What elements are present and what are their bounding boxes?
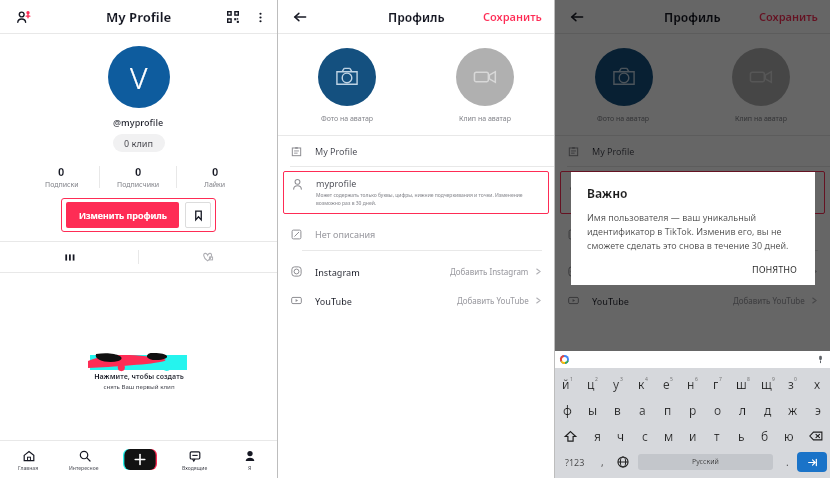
- button[interactable]: My Profile: [278, 136, 554, 166]
- button[interactable]: ч: [609, 423, 633, 449]
- button[interactable]: г: [705, 371, 730, 397]
- button[interactable]: myprofile: [560, 171, 825, 214]
- button[interactable]: э: [805, 397, 830, 423]
- button[interactable]: щ: [755, 371, 780, 397]
- staticText: Подписки: [45, 180, 79, 190]
- staticText: ж: [788, 402, 798, 418]
- button[interactable]: н: [680, 371, 705, 397]
- button[interactable]: е: [655, 371, 680, 397]
- staticText: м: [664, 428, 674, 444]
- staticText: щ: [761, 376, 772, 392]
- button[interactable]: Back: [563, 3, 591, 31]
- button[interactable]: Русский: [638, 454, 773, 470]
- staticText: V: [130, 57, 148, 98]
- button[interactable]: ц: [580, 371, 605, 397]
- button[interactable]: QR code: [219, 3, 247, 31]
- staticText: Профиль: [388, 9, 445, 25]
- button[interactable]: Instagram: [555, 257, 830, 286]
- staticText: 2: [595, 376, 598, 383]
- staticText: Главная: [18, 465, 39, 472]
- button[interactable]: а: [630, 397, 655, 423]
- button[interactable]: Клип на аватар: [416, 48, 554, 124]
- button[interactable]: Фото на аватар: [555, 48, 692, 124]
- button[interactable]: myprofile: [283, 171, 549, 214]
- button[interactable]: 0: [24, 164, 99, 190]
- button[interactable]: Изменить профиль: [66, 202, 179, 228]
- button[interactable]: Videos: [0, 242, 138, 272]
- staticText: Добавить Instagram: [726, 266, 805, 277]
- button[interactable]: ш: [730, 371, 755, 397]
- button[interactable]: в: [605, 397, 630, 423]
- button[interactable]: 0: [177, 164, 253, 190]
- button[interactable]: с: [633, 423, 657, 449]
- button[interactable]: Главная: [0, 441, 56, 478]
- button[interactable]: Next: [797, 452, 827, 472]
- button[interactable]: ю: [777, 423, 801, 449]
- button[interactable]: Add friends: [8, 2, 38, 32]
- button[interactable]: я: [585, 423, 609, 449]
- staticText: Нажмите, чтобы создать: [94, 372, 184, 382]
- button[interactable]: ф: [555, 397, 580, 423]
- button[interactable]: Я: [222, 441, 277, 478]
- button[interactable]: ы: [580, 397, 605, 423]
- button[interactable]: й: [555, 371, 580, 397]
- button[interactable]: к: [630, 371, 655, 397]
- button[interactable]: ?123: [558, 449, 592, 475]
- button[interactable]: Liked: [139, 242, 277, 272]
- button[interactable]: My Profile: [555, 136, 830, 166]
- button[interactable]: Change language: [612, 449, 634, 475]
- staticText: л: [739, 402, 747, 418]
- staticText: Сохранить: [759, 9, 818, 24]
- button[interactable]: о: [705, 397, 730, 423]
- button[interactable]: Profile photo: [108, 46, 170, 108]
- staticText: Интересное: [69, 465, 99, 472]
- staticText: ш: [736, 376, 747, 392]
- button[interactable]: и: [681, 423, 705, 449]
- button[interactable]: Instagram: [278, 257, 554, 286]
- button[interactable]: м: [657, 423, 681, 449]
- button[interactable]: Клип на аватар: [692, 48, 830, 124]
- button[interactable]: Backspace: [801, 423, 830, 449]
- button[interactable]: п: [655, 397, 680, 423]
- button[interactable]: 0 клип: [113, 134, 165, 152]
- staticText: Сохранить: [483, 9, 542, 24]
- button[interactable]: Сохранить: [479, 5, 546, 28]
- staticText: р: [689, 402, 697, 418]
- staticText: т: [714, 428, 720, 444]
- button[interactable]: р: [680, 397, 705, 423]
- button[interactable]: YouTube: [278, 286, 554, 315]
- button[interactable]: Нет описания: [555, 218, 830, 250]
- button[interactable]: Входящие: [167, 441, 222, 478]
- button[interactable]: ,: [592, 449, 612, 475]
- button[interactable]: Bookmarks: [185, 202, 211, 228]
- staticText: Добавить Instagram: [450, 266, 529, 277]
- button[interactable]: YouTube: [555, 286, 830, 315]
- button[interactable]: з: [780, 371, 805, 397]
- button[interactable]: Фото на аватар: [278, 48, 416, 124]
- button[interactable]: Сохранить: [755, 5, 822, 28]
- staticText: д: [764, 402, 772, 418]
- button[interactable]: х: [805, 371, 830, 397]
- staticText: снять Ваш первый клип: [103, 383, 175, 391]
- button[interactable]: Нет описания: [278, 218, 554, 250]
- button[interactable]: Shift: [555, 423, 585, 449]
- button[interactable]: ПОНЯТНО: [748, 261, 801, 277]
- button[interactable]: Create: [123, 449, 157, 470]
- button[interactable]: л: [730, 397, 755, 423]
- staticText: Фото на аватар: [321, 114, 374, 124]
- button[interactable]: Интересное: [56, 441, 112, 478]
- staticText: 0 клип: [124, 137, 154, 149]
- button[interactable]: д: [755, 397, 780, 423]
- button[interactable]: 0: [100, 164, 176, 190]
- button[interactable]: ж: [780, 397, 805, 423]
- button[interactable]: б: [753, 423, 777, 449]
- staticText: я: [594, 428, 601, 444]
- button[interactable]: Back: [286, 3, 314, 31]
- button[interactable]: More options: [247, 4, 273, 30]
- button[interactable]: у: [605, 371, 630, 397]
- button[interactable]: т: [705, 423, 729, 449]
- button[interactable]: .: [777, 449, 797, 475]
- staticText: н: [687, 376, 695, 392]
- button[interactable]: ь: [729, 423, 753, 449]
